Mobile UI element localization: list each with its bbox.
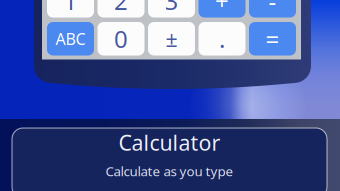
- button[interactable]: 3: [148, 0, 195, 17]
- staticText: 0: [114, 23, 128, 55]
- button[interactable]: ABC: [47, 22, 94, 55]
- button[interactable]: Calculator: [12, 128, 327, 191]
- staticText: ±: [165, 25, 177, 53]
- button[interactable]: 1: [47, 0, 94, 17]
- button[interactable]: .: [198, 22, 245, 55]
- button[interactable]: ±: [148, 22, 195, 55]
- staticText: Calculate as you type: [105, 162, 233, 180]
- staticText: ABC: [55, 28, 85, 49]
- staticText: 3: [164, 0, 178, 17]
- staticText: +: [215, 0, 229, 17]
- staticText: =: [265, 23, 279, 55]
- button[interactable]: -: [249, 0, 296, 17]
- button[interactable]: =: [249, 22, 296, 55]
- button[interactable]: +: [198, 0, 245, 17]
- staticText: -: [268, 0, 276, 17]
- staticText: Calculator: [118, 128, 220, 157]
- staticText: 1: [63, 0, 77, 17]
- button[interactable]: 2: [97, 0, 144, 17]
- button[interactable]: 0: [97, 22, 144, 55]
- staticText: 2: [114, 0, 128, 17]
- staticText: .: [219, 23, 225, 55]
